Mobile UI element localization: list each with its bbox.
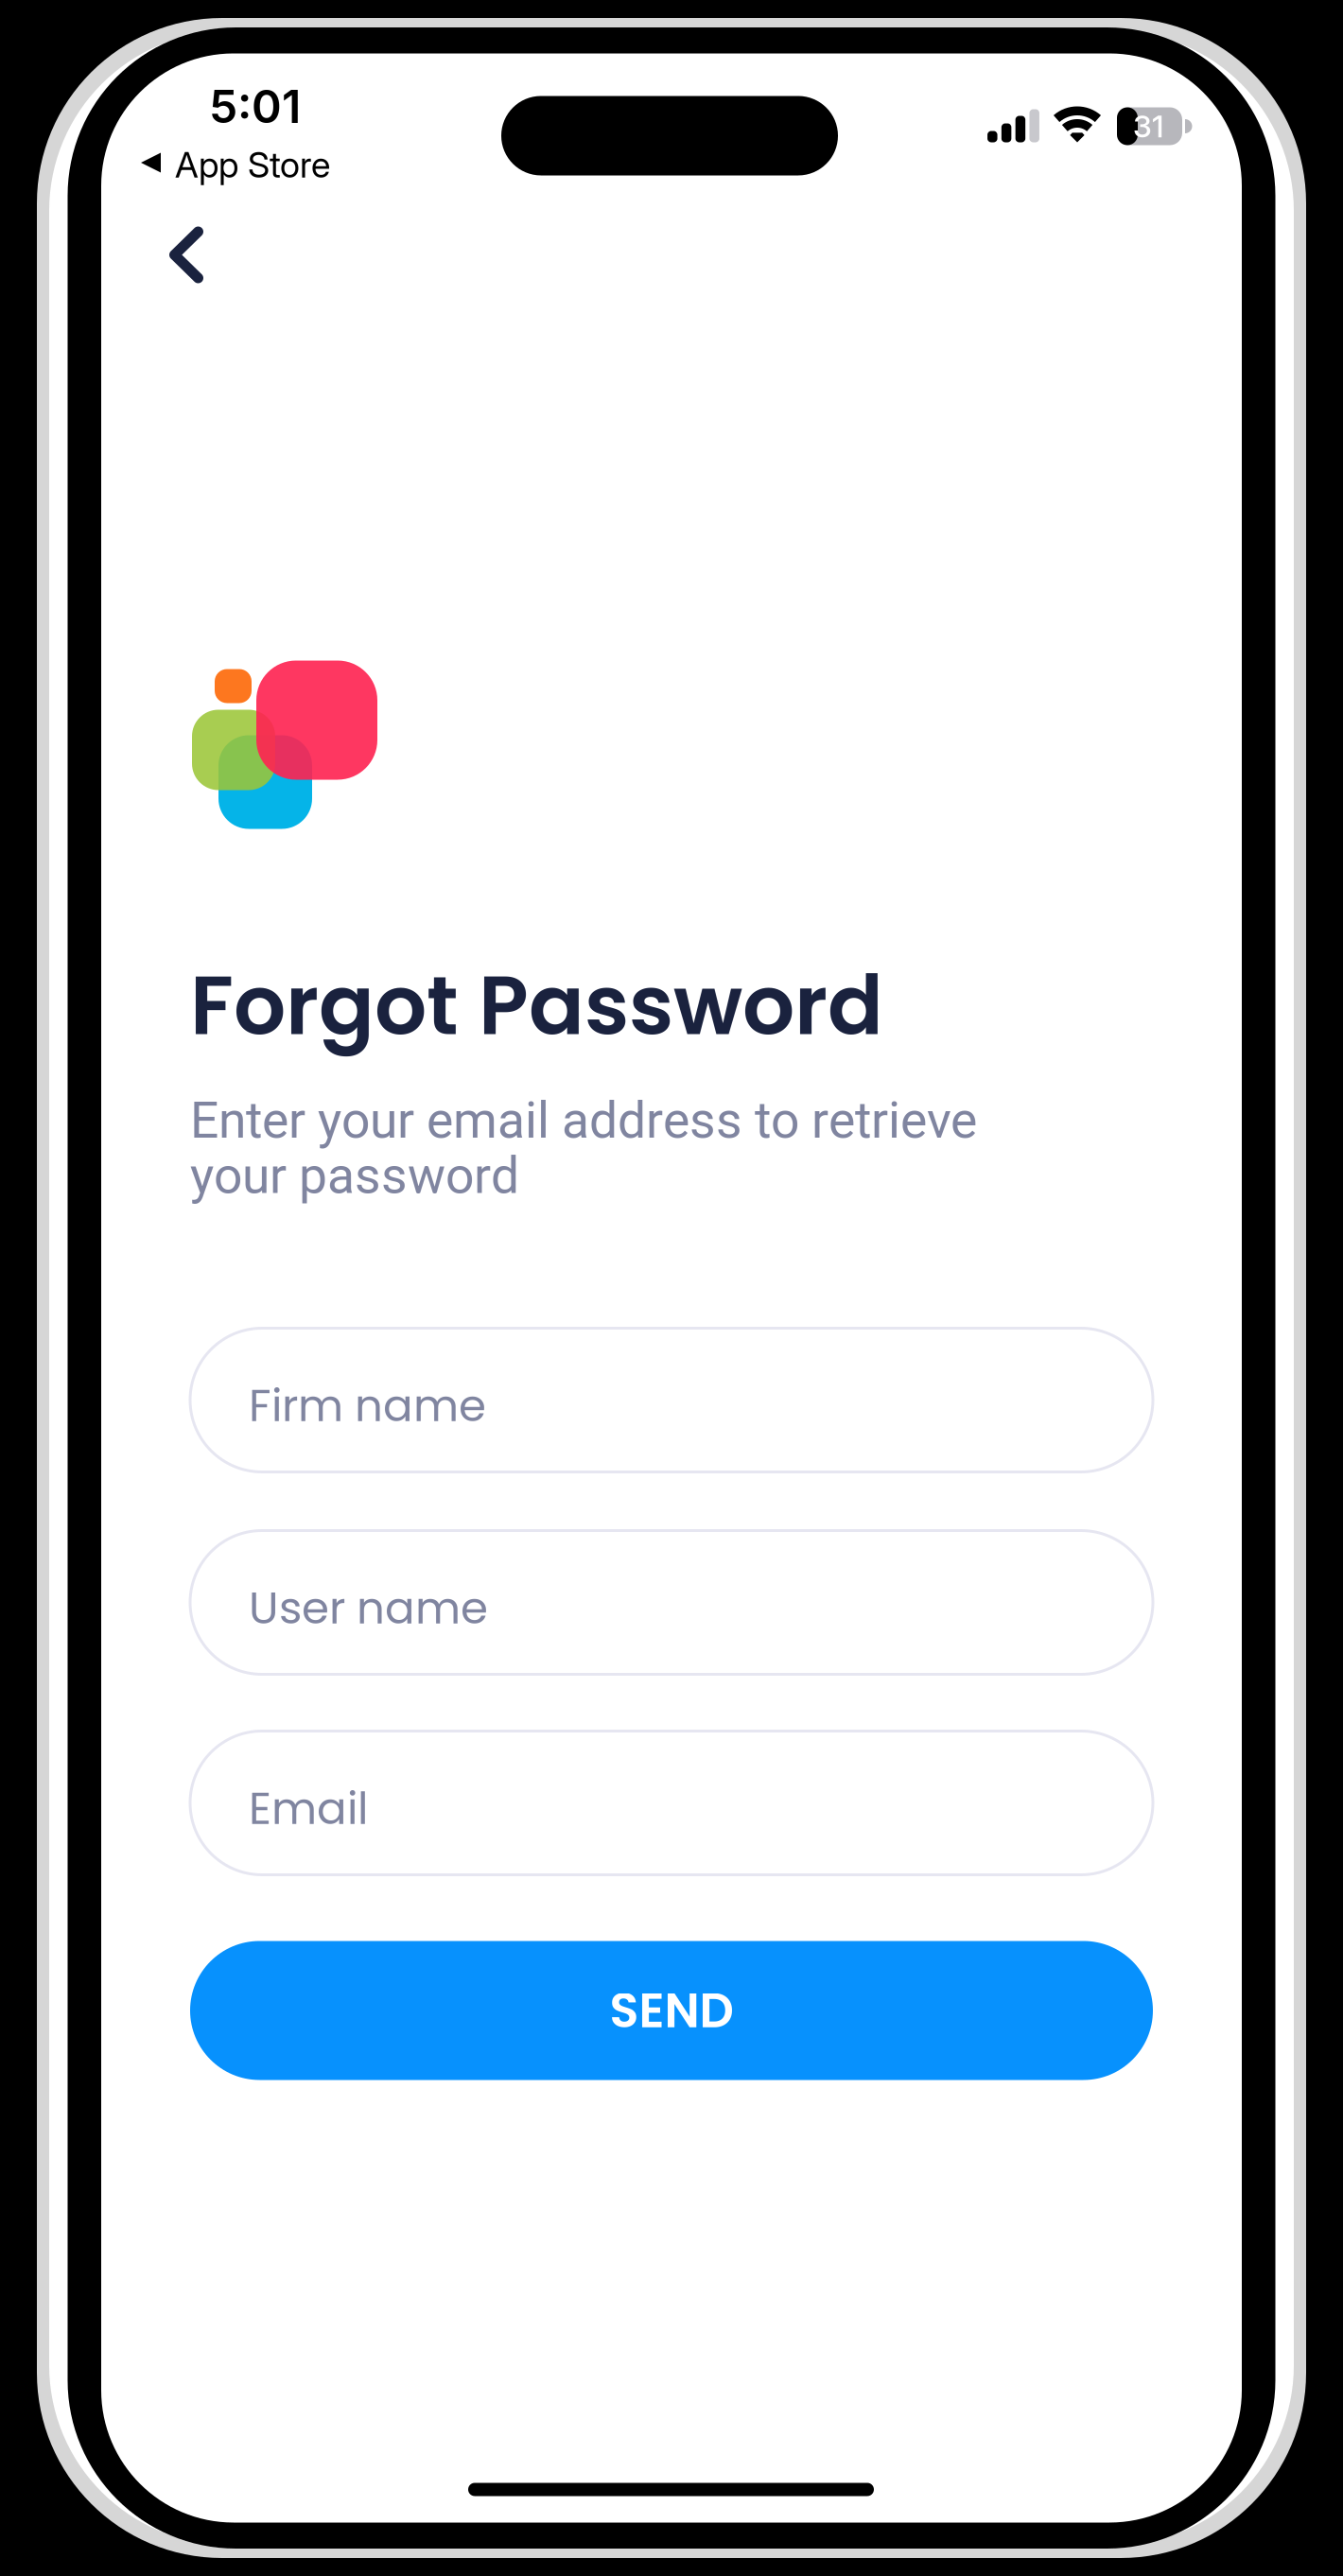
staticText: Forgot Password [190,948,883,1063]
button[interactable]: App Store [141,143,368,185]
staticText: Email [249,1778,368,1839]
staticText: App Store [175,143,330,186]
button[interactable]: SEND [190,1941,1153,2080]
staticText: User name [249,1577,488,1639]
staticText: SEND [610,1977,733,2044]
button[interactable]: Firm name [190,1328,1153,1472]
staticText: 31 [1133,108,1164,144]
button[interactable]: User name [190,1531,1153,1674]
staticText: Firm name [249,1375,486,1437]
staticText: 5:01 [209,79,301,134]
staticText: Enter your email address to retrieve you… [190,1091,977,1205]
button[interactable]: Email [190,1731,1153,1875]
button[interactable]: Back [146,208,218,302]
